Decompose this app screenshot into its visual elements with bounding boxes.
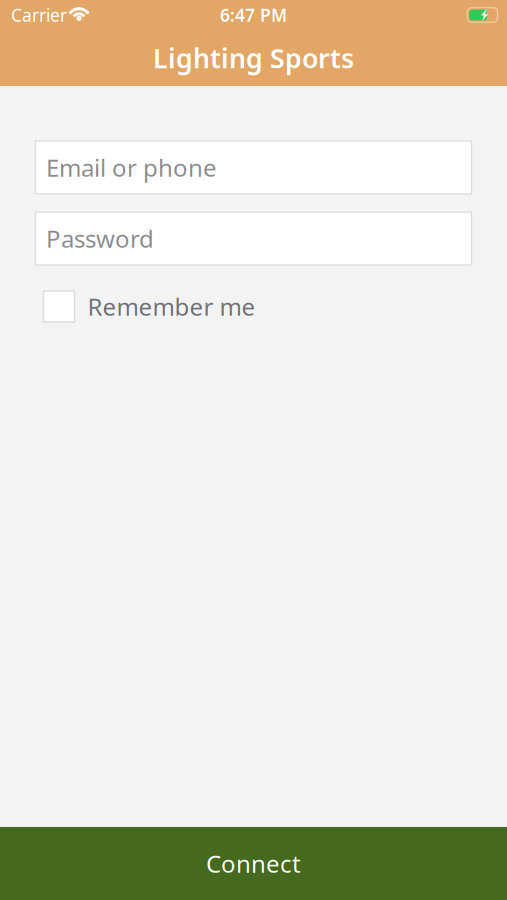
button[interactable]: Remember me <box>35 290 471 323</box>
button[interactable]: Connect <box>0 827 507 900</box>
staticText: Remember me <box>87 291 255 322</box>
staticText: Email or phone <box>46 152 217 183</box>
button[interactable]: Password <box>35 212 471 265</box>
staticText: 6:47 PM <box>220 3 287 26</box>
staticText: Carrier <box>11 3 67 26</box>
staticText: Password <box>46 223 154 254</box>
staticText: Lighting Sports <box>153 40 354 76</box>
staticText: Connect <box>206 848 301 879</box>
button[interactable]: Email or phone <box>35 141 471 194</box>
